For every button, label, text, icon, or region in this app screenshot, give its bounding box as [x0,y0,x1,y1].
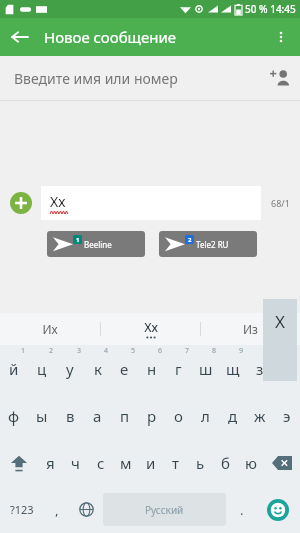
button[interactable]: 1 [47,231,145,257]
button[interactable]: Add contact [260,58,300,98]
button[interactable]: ш [192,345,219,392]
button[interactable]: Из [201,313,300,345]
button[interactable]: Введите имя или номер [0,56,300,100]
staticText: 50 % 14:45 [245,2,296,16]
button[interactable]: б [213,439,238,486]
button[interactable]: Change language [71,486,101,533]
staticText: а [93,406,102,426]
staticText: и [146,453,156,473]
button[interactable]: Shift [0,439,38,486]
button[interactable]: . [228,486,256,533]
staticText: Их [42,321,58,337]
button[interactable]: Attach [10,192,32,214]
button[interactable]: ?123 [0,486,43,533]
button[interactable]: э [273,392,300,439]
staticText: 68/1 [271,197,290,209]
staticText: у [66,359,74,379]
staticText: 4 [104,346,109,356]
staticText: е [120,359,129,379]
button[interactable]: н [138,345,165,392]
staticText: м [120,453,132,473]
button[interactable]: щ [219,345,246,392]
staticText: й [9,359,19,379]
button[interactable]: ч [63,439,88,486]
staticText: э [283,406,291,426]
staticText: 1 [76,236,80,244]
button[interactable]: Emoji [256,486,300,533]
button[interactable]: д [219,392,246,439]
button[interactable]: 2 [159,231,257,257]
button[interactable]: ц [28,345,56,392]
staticText: 5 [131,346,136,356]
staticText: н [147,359,157,379]
button[interactable]: More options [262,18,300,56]
button[interactable]: ю [238,439,263,486]
staticText: ь [196,453,205,473]
button[interactable]: , [43,486,71,533]
staticText: ч [71,453,80,473]
button[interactable]: в [56,392,84,439]
button[interactable]: Хх [101,313,200,345]
staticText: Новое сообщение [44,27,177,47]
staticText: 1 [21,346,26,356]
button[interactable]: Хх [41,186,261,220]
button[interactable]: я [38,439,63,486]
staticText: 2 [49,346,54,356]
staticText: 8 [212,346,217,356]
staticText: 9 [239,346,244,356]
button[interactable]: Их [0,313,100,345]
staticText: ?123 [10,502,34,517]
staticText: с [97,453,105,473]
staticText: ц [37,359,47,379]
button[interactable]: и [138,439,163,486]
staticText: 3 [77,346,82,356]
button[interactable]: о [165,392,192,439]
staticText: г [175,359,182,379]
button[interactable]: к [84,345,111,392]
button[interactable]: р [138,392,165,439]
button[interactable]: г [165,345,192,392]
staticText: , [55,501,59,519]
staticText: Хх [144,319,158,335]
button[interactable]: п [111,392,138,439]
staticText: 7 [185,346,190,356]
staticText: т [172,453,179,473]
staticText: 2 [188,236,192,244]
button[interactable]: з [246,345,273,392]
staticText: 6 [158,346,163,356]
button[interactable]: ф [0,392,28,439]
button[interactable]: Русский [103,493,226,526]
button[interactable]: Backspace [263,439,300,486]
button[interactable]: с [88,439,113,486]
button[interactable]: а [84,392,111,439]
staticText: з [256,359,264,379]
button[interactable]: ы [28,392,56,439]
button[interactable]: Back [0,18,38,56]
button[interactable]: ж [246,392,273,439]
button[interactable]: т [163,439,188,486]
staticText: ш [199,359,213,379]
staticText: д [228,406,238,426]
staticText: я [46,453,55,473]
button[interactable]: у [56,345,84,392]
staticText: . [240,501,244,519]
button[interactable]: е [111,345,138,392]
button[interactable]: х [273,345,300,392]
staticText: Х [275,310,285,333]
button[interactable]: ь [188,439,213,486]
button[interactable]: м [113,439,138,486]
staticText: п [120,406,130,426]
button[interactable]: л [192,392,219,439]
button[interactable]: й [0,345,28,392]
staticText: в [66,406,75,426]
staticText: л [201,406,210,426]
staticText: Из [243,321,258,337]
staticText: ы [36,406,48,426]
staticText: Tele2 RU [196,239,229,250]
staticText: ф [8,406,20,426]
staticText: щ [226,359,240,379]
staticText: к [94,359,102,379]
staticText: Русский [145,503,184,517]
